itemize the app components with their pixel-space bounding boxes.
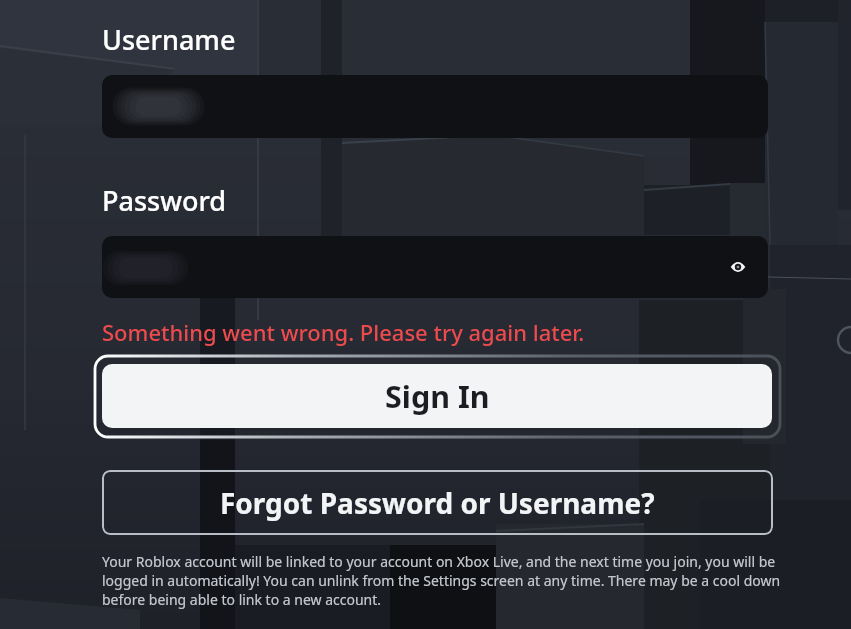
button[interactable]	[102, 236, 768, 298]
button[interactable]	[102, 75, 768, 138]
staticText: Your Roblox account will be linked to yo…	[102, 552, 781, 609]
button[interactable]: Sign In	[102, 364, 772, 428]
staticText: Sign In	[385, 375, 490, 417]
staticText: Username	[102, 21, 236, 58]
staticText: Forgot Password or Username?	[220, 484, 655, 522]
staticText: Password	[102, 182, 227, 219]
button[interactable]: Forgot Password or Username?	[102, 470, 773, 535]
staticText: Something went wrong. Please try again l…	[102, 317, 585, 347]
